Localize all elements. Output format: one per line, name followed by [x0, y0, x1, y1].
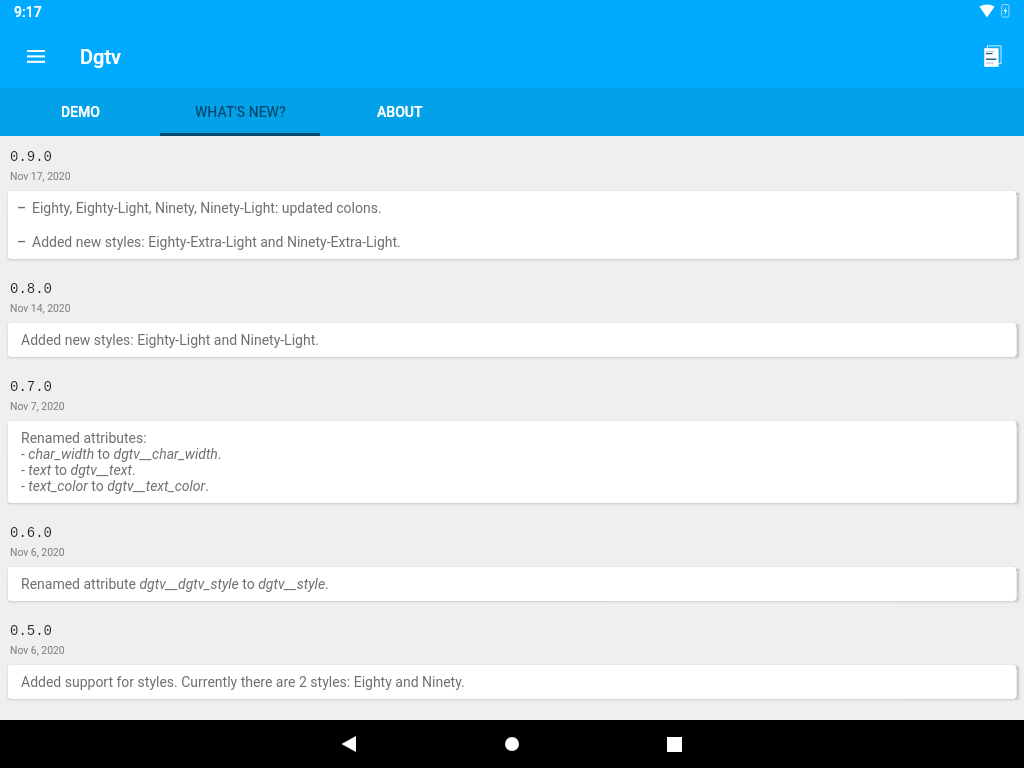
staticText: – — [17, 200, 27, 216]
staticText: 0.6.0 — [10, 525, 53, 541]
staticText: Nov 17, 2020 — [10, 170, 71, 182]
button[interactable]: ABOUT — [320, 88, 480, 136]
button[interactable]: Renamed attributes: - char_width to dgtv… — [8, 421, 1016, 503]
button[interactable]: Home — [488, 720, 536, 768]
staticText: DEMO — [61, 104, 100, 120]
button[interactable]: Added new styles: Eighty-Light and Ninet… — [8, 323, 1016, 357]
staticText: Dgtv — [80, 45, 121, 68]
button[interactable]: Release notes — [970, 32, 1018, 80]
staticText: 9:17 — [14, 4, 42, 20]
button[interactable]: Back — [325, 720, 373, 768]
staticText: Added support for styles. Currently ther… — [21, 674, 465, 690]
staticText: Renamed attributes: - char_width to dgtv… — [21, 430, 222, 494]
staticText: ABOUT — [377, 104, 423, 120]
button[interactable]: Added support for styles. Currently ther… — [8, 665, 1016, 699]
button[interactable]: Renamed attribute dgtv__dgtv_style to dg… — [8, 567, 1016, 601]
staticText: Renamed attribute dgtv__dgtv_style to dg… — [21, 576, 329, 592]
staticText: WHAT'S NEW? — [195, 104, 286, 120]
staticText: 0.8.0 — [10, 281, 53, 297]
staticText: Added new styles: Eighty-Extra-Light and… — [32, 234, 401, 250]
button[interactable]: DEMO — [0, 88, 160, 136]
staticText: Nov 6, 2020 — [10, 546, 65, 558]
button[interactable]: Open navigation drawer — [12, 32, 60, 80]
button[interactable]: – — [8, 191, 1016, 259]
staticText: 0.9.0 — [10, 149, 53, 165]
button[interactable]: WHAT'S NEW? — [160, 88, 320, 136]
staticText: 0.5.0 — [10, 623, 53, 639]
staticText: Nov 6, 2020 — [10, 644, 65, 656]
button[interactable]: Recent apps — [650, 720, 698, 768]
staticText: Nov 14, 2020 — [10, 302, 71, 314]
staticText: Added new styles: Eighty-Light and Ninet… — [21, 332, 319, 348]
staticText: Eighty, Eighty-Light, Ninety, Ninety-Lig… — [32, 200, 382, 216]
staticText: 0.7.0 — [10, 379, 53, 395]
staticText: – — [17, 234, 27, 250]
staticText: Nov 7, 2020 — [10, 400, 65, 412]
